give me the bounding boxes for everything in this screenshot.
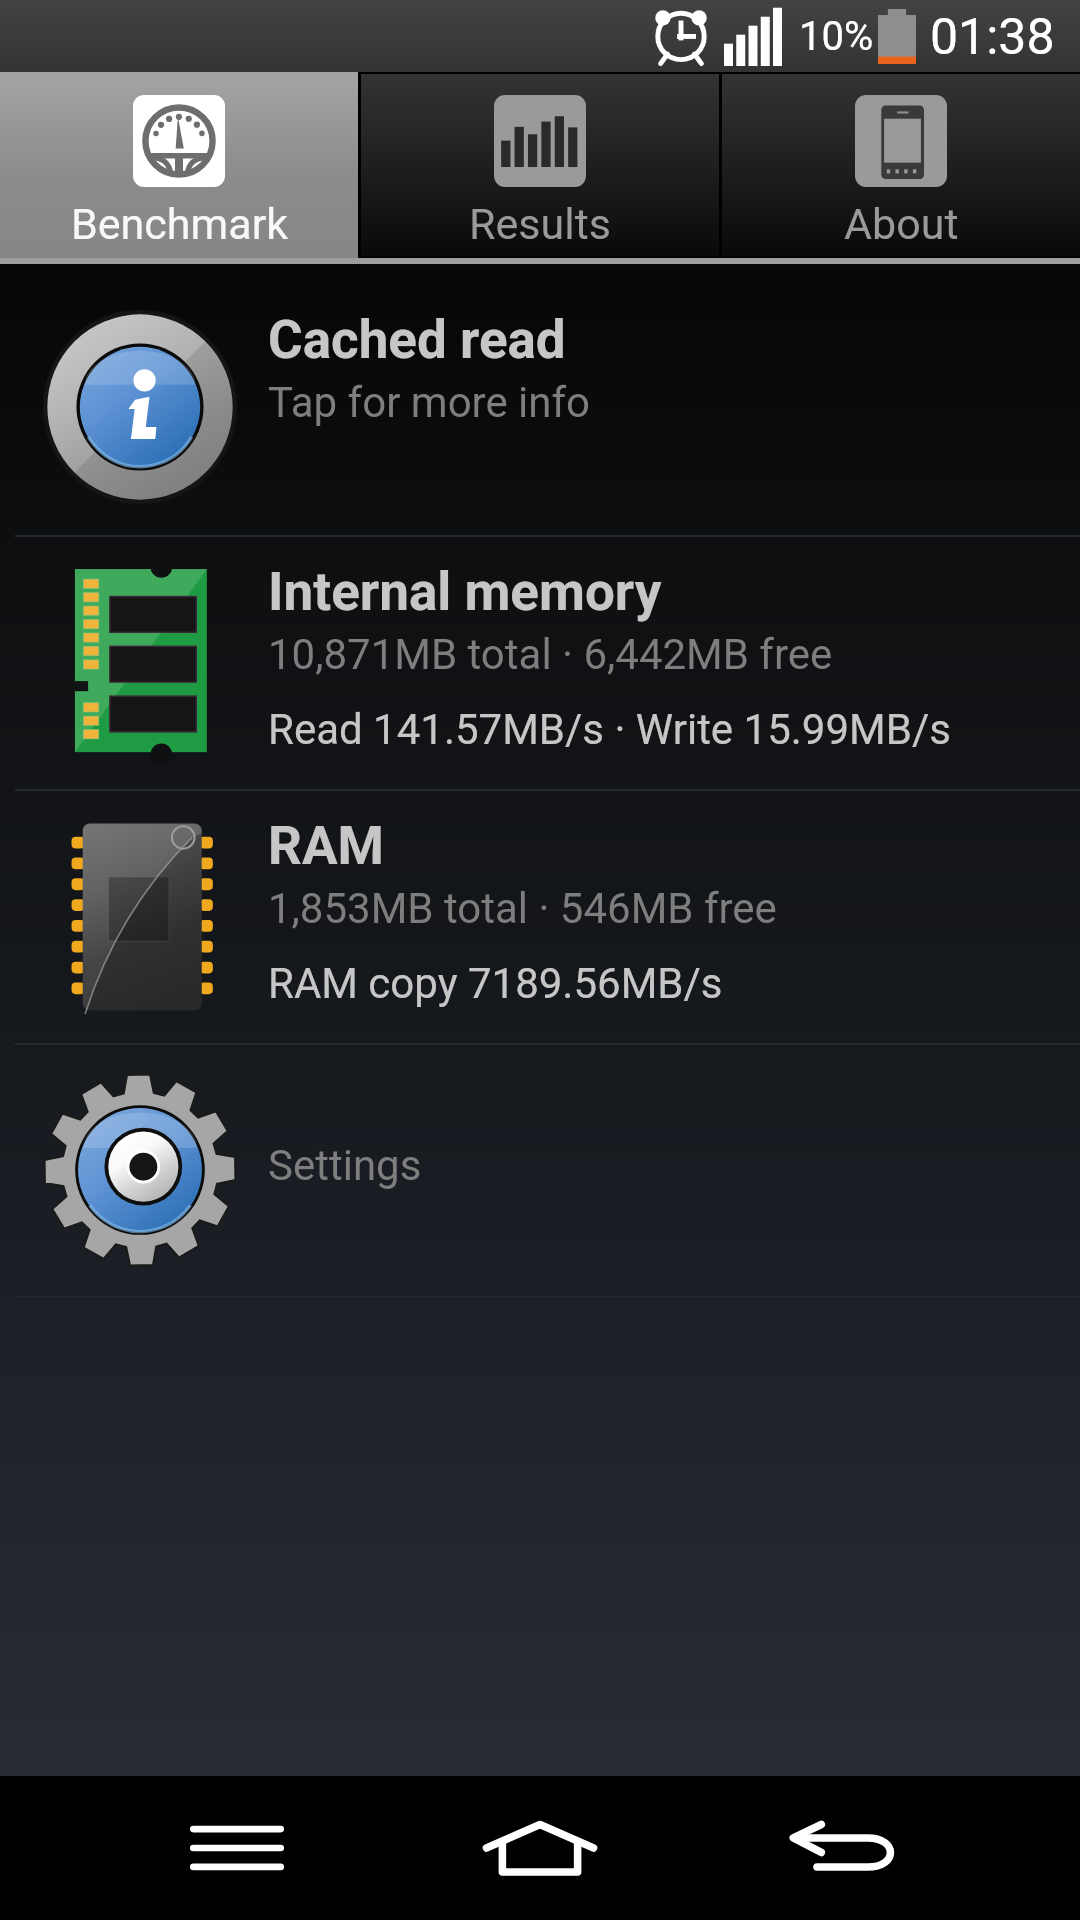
staticText: Settings bbox=[268, 1141, 422, 1190]
staticText: Tap for more info bbox=[268, 378, 591, 427]
staticText: Results bbox=[469, 199, 611, 249]
button[interactable]: Cached read bbox=[0, 264, 1080, 535]
button[interactable]: Benchmark bbox=[0, 72, 358, 258]
staticText: Cached read bbox=[268, 309, 566, 371]
button[interactable]: Internal memory bbox=[0, 535, 1080, 789]
staticText: 01:38 bbox=[930, 8, 1055, 67]
button[interactable]: Settings bbox=[0, 1043, 1080, 1296]
staticText: Internal memory bbox=[268, 561, 662, 623]
button[interactable]: Results bbox=[361, 72, 719, 258]
staticText: RAM copy 7189.56MB/s bbox=[268, 959, 723, 1008]
staticText: Read 141.57MB/s · Write 15.99MB/s bbox=[268, 705, 951, 754]
button[interactable]: Back bbox=[720, 1776, 1080, 1920]
staticText: About bbox=[844, 199, 959, 249]
staticText: RAM bbox=[268, 815, 384, 877]
staticText: 10,871MB total · 6,442MB free bbox=[268, 630, 833, 679]
button[interactable]: About bbox=[722, 72, 1080, 258]
staticText: Benchmark bbox=[71, 199, 288, 249]
staticText: 1,853MB total · 546MB free bbox=[268, 884, 777, 933]
button[interactable]: Menu bbox=[0, 1776, 360, 1920]
button[interactable]: RAM bbox=[0, 789, 1080, 1043]
staticText: 10% bbox=[799, 13, 874, 60]
button[interactable]: Home bbox=[360, 1776, 720, 1920]
